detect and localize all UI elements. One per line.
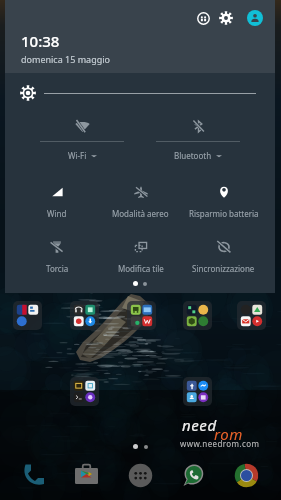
staticText: domenica 15 maggio (21, 53, 111, 65)
staticText: Sincronizzazione (192, 263, 255, 274)
button[interactable]: Chrome (234, 463, 259, 488)
button[interactable]: Folder (70, 301, 99, 330)
button[interactable]: Users (192, 7, 214, 29)
button[interactable]: Folder (13, 301, 42, 330)
staticText: rom (214, 424, 244, 444)
button[interactable]: Folder (183, 377, 212, 406)
button[interactable]: WhatsApp (181, 463, 206, 488)
staticText: Modifica tile (118, 263, 164, 274)
button[interactable]: Folder (183, 301, 212, 330)
staticText: Modalità aereo (112, 208, 169, 219)
button[interactable]: Settings (215, 7, 237, 29)
button[interactable]: Apps (128, 463, 153, 488)
button[interactable]: Phone (20, 463, 45, 488)
staticText: Wi-Fi (68, 150, 87, 161)
staticText: Bluetooth (174, 150, 212, 161)
button[interactable]: Risparmio batteria (182, 186, 265, 221)
staticText: 10:38 (21, 31, 60, 51)
button[interactable]: Modalità aereo (99, 186, 182, 221)
button[interactable]: Wind (15, 186, 99, 221)
button[interactable]: Play Store (74, 463, 99, 488)
staticText: need (182, 415, 217, 435)
staticText: Risparmio batteria (189, 208, 259, 219)
button[interactable]: Profile (244, 7, 266, 29)
button[interactable]: Bluetooth (140, 120, 256, 166)
staticText: www.needrom.com (180, 438, 260, 449)
button[interactable]: Folder (70, 377, 99, 406)
button[interactable]: Modifica tile (99, 241, 182, 276)
staticText: Torcia (46, 263, 69, 274)
button[interactable]: Wi-Fi (24, 120, 140, 166)
button[interactable]: Folder (127, 301, 156, 330)
button[interactable]: Sincronizzazione (182, 241, 265, 276)
staticText: Wind (47, 208, 67, 219)
button[interactable]: Folder (237, 301, 266, 330)
button[interactable]: Torcia (15, 241, 99, 276)
